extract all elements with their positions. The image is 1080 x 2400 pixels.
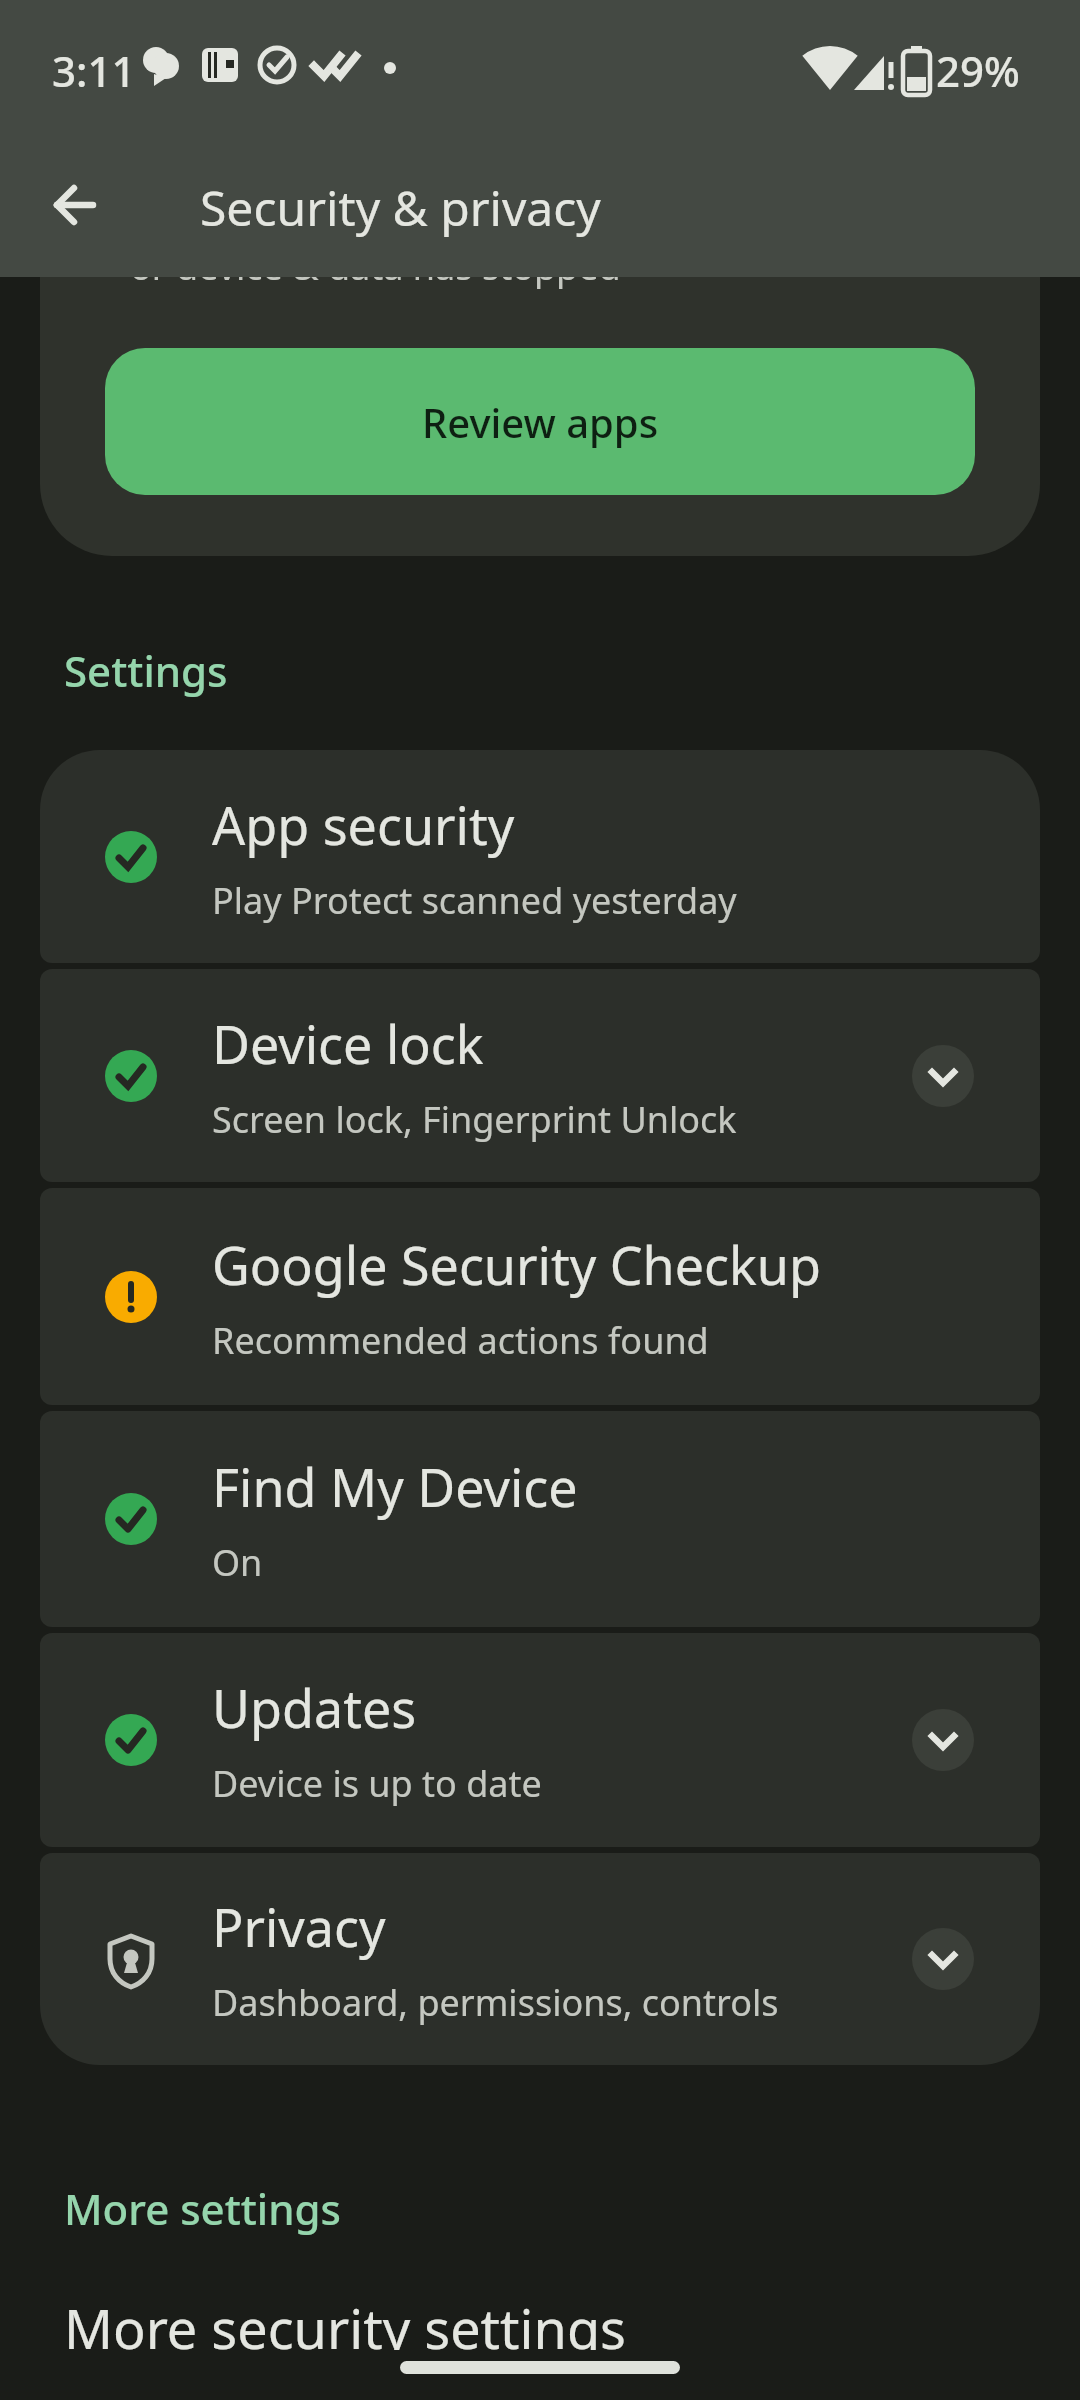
- button[interactable]: Device lock: [40, 969, 1040, 1182]
- button[interactable]: [53, 183, 97, 227]
- staticText: Recommended actions found: [212, 1316, 709, 1365]
- button[interactable]: More security settings: [0, 2270, 1080, 2400]
- button[interactable]: Updates: [40, 1633, 1040, 1847]
- staticText: Review apps: [422, 395, 659, 449]
- button[interactable]: Privacy: [40, 1853, 1040, 2065]
- staticText: More security settings: [64, 2291, 626, 2365]
- button[interactable]: Review apps: [105, 348, 975, 495]
- staticText: More settings: [64, 2180, 341, 2237]
- button[interactable]: [912, 1928, 974, 1990]
- button[interactable]: Google Security Checkup: [40, 1188, 1040, 1405]
- staticText: Privacy: [212, 1891, 386, 1962]
- staticText: 29%: [936, 42, 1020, 99]
- button[interactable]: [912, 1045, 974, 1107]
- staticText: On: [212, 1538, 263, 1587]
- staticText: Screen lock, Fingerprint Unlock: [212, 1095, 737, 1144]
- button[interactable]: App security: [40, 750, 1040, 963]
- staticText: Device lock: [212, 1008, 484, 1079]
- staticText: Play Protect scanned yesterday: [212, 876, 737, 925]
- button[interactable]: Find My Device: [40, 1411, 1040, 1627]
- staticText: Device is up to date: [212, 1759, 542, 1808]
- button[interactable]: [912, 1709, 974, 1771]
- staticText: Security & privacy: [200, 175, 601, 240]
- staticText: Google Security Checkup: [212, 1229, 821, 1300]
- staticText: Find My Device: [212, 1451, 578, 1522]
- staticText: or device & data has stopped: [130, 242, 621, 291]
- staticText: Dashboard, permissions, controls: [212, 1978, 779, 2027]
- staticText: Updates: [212, 1672, 417, 1743]
- staticText: Settings: [64, 642, 228, 699]
- staticText: App security: [212, 789, 515, 860]
- staticText: 3:11: [52, 42, 136, 99]
